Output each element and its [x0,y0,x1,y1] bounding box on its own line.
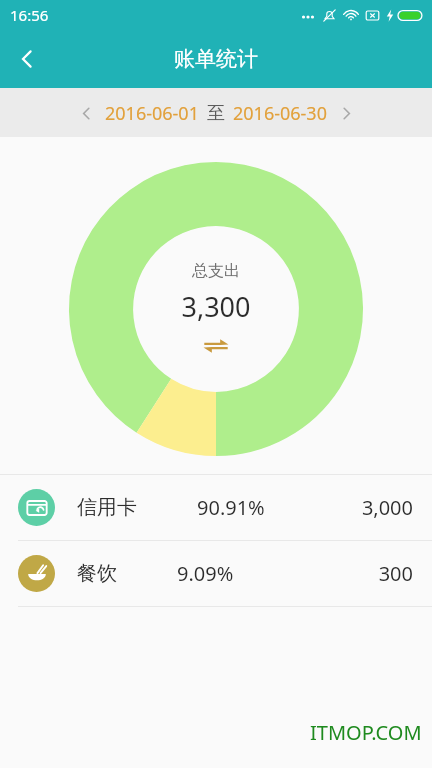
button[interactable]: 信用卡 [0,475,432,540]
staticText: 至 [207,102,225,125]
button[interactable]: 2016-06-01 [103,101,201,126]
staticText: 餐饮 [77,561,117,586]
button[interactable]: 餐饮 [0,541,432,606]
button[interactable]: Next period [329,96,363,130]
staticText: 2016-06-01 [105,101,199,126]
button[interactable]: Switch income expense [199,335,233,357]
staticText: 账单统计 [174,46,258,72]
staticText: 总支出 [192,261,240,281]
staticText: ITMOP.COM [310,719,422,746]
staticText: 2016-06-30 [233,101,327,126]
button[interactable]: Back [0,32,54,86]
button[interactable]: Previous period [69,96,103,130]
staticText: 3,000 [361,494,413,521]
button[interactable]: 2016-06-30 [231,101,329,126]
staticText: 300 [378,560,413,587]
staticText: 16:56 [10,5,49,25]
staticText: 9.09% [177,560,234,587]
staticText: 90.91% [197,494,265,521]
staticText: 信用卡 [77,495,137,520]
staticText: 3,300 [181,288,251,325]
